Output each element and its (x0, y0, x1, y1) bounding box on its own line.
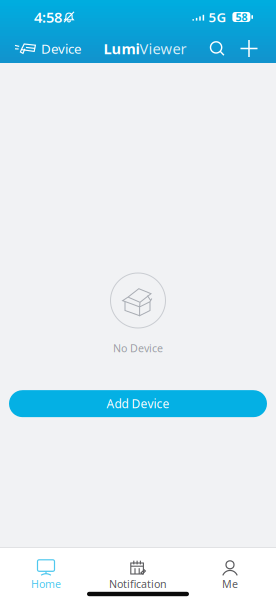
staticText: No Device (113, 341, 163, 355)
button[interactable]: Notification (92, 548, 184, 591)
staticText: Add Device (106, 396, 169, 412)
button[interactable]: Add device (236, 34, 262, 63)
staticText: Lumi (103, 39, 139, 58)
staticText: 5G (208, 8, 226, 26)
button[interactable]: Device (0, 34, 86, 63)
staticText: Device (41, 40, 82, 57)
staticText: 4:58 (34, 7, 62, 27)
staticText: Viewer (139, 39, 186, 58)
button[interactable]: Add Device (9, 390, 267, 417)
staticText: Notification (109, 577, 167, 591)
button[interactable]: Search (204, 34, 230, 63)
button[interactable]: Home (0, 548, 92, 591)
staticText: 58 (235, 10, 247, 24)
button[interactable]: Me (184, 548, 276, 591)
staticText: Me (222, 577, 238, 591)
staticText: Home (31, 577, 61, 591)
